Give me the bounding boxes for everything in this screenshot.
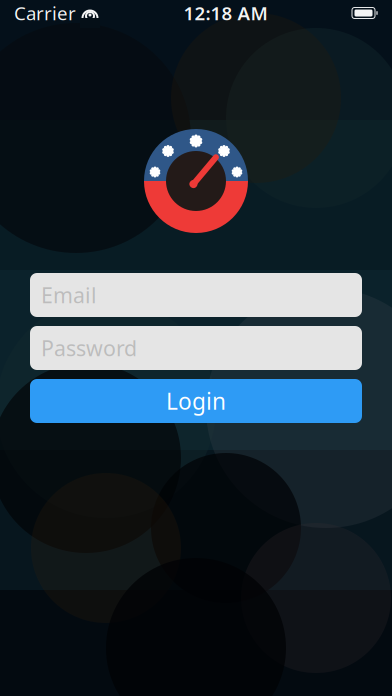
button[interactable]: Password: [30, 326, 362, 370]
staticText: Carrier: [14, 1, 76, 25]
staticText: Login: [166, 386, 226, 416]
staticText: Email: [41, 281, 97, 309]
staticText: Password: [41, 334, 137, 362]
staticText: 12:18 AM: [183, 1, 267, 25]
button[interactable]: Login: [30, 379, 362, 423]
button[interactable]: Email: [30, 273, 362, 317]
